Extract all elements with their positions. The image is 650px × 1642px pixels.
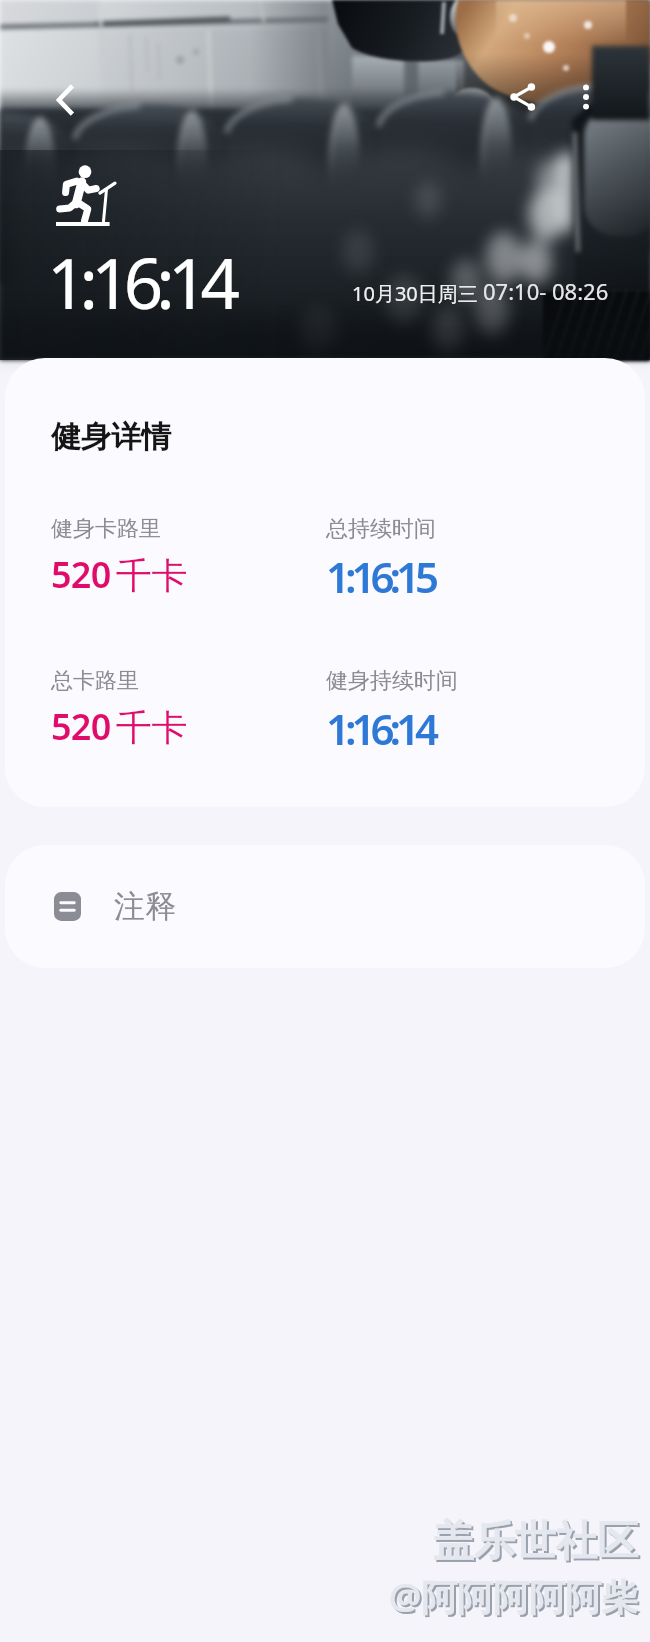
staticText: 10月30日周三 xyxy=(352,280,478,307)
button[interactable]: Share xyxy=(497,71,549,123)
button[interactable]: Back xyxy=(40,74,92,126)
staticText: 1:16:14 xyxy=(326,700,435,757)
staticText: 盖乐世社区 xyxy=(433,1516,638,1568)
staticText: 盖乐世社区 xyxy=(435,1518,640,1570)
button[interactable]: 注释 xyxy=(5,845,645,968)
staticText: 520 千卡 xyxy=(51,550,187,599)
staticText: 健身持续时间 xyxy=(326,667,458,695)
staticText: 07:10- 08:26 xyxy=(483,276,609,306)
staticText: 520 千卡 xyxy=(51,702,187,751)
staticText: 1:16:15 xyxy=(326,548,435,605)
staticText: 总持续时间 xyxy=(326,515,436,543)
staticText: @阿阿阿阿阿柴 xyxy=(391,1574,640,1623)
staticText: 健身卡路里 xyxy=(51,515,161,543)
staticText: 1:16:14 xyxy=(47,235,234,329)
staticText: 健身详情 xyxy=(51,418,171,456)
staticText: @阿阿阿阿阿柴 xyxy=(389,1572,638,1621)
staticText: 总卡路里 xyxy=(51,667,139,695)
staticText: 注释 xyxy=(114,887,176,926)
button[interactable]: More options xyxy=(560,71,612,123)
